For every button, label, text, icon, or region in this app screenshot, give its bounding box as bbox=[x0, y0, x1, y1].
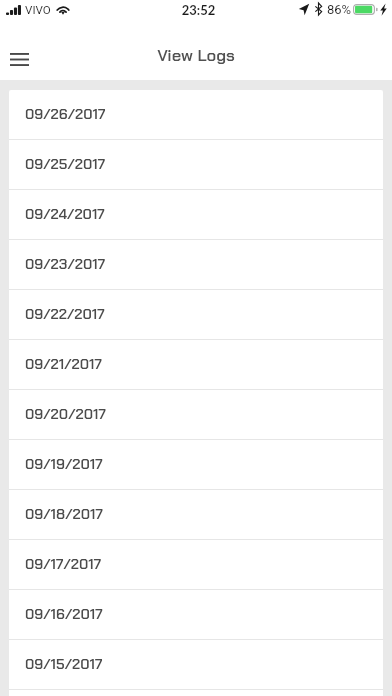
button[interactable]: Open navigation menu bbox=[0, 30, 38, 80]
staticText: 09/16/2017 bbox=[25, 605, 103, 624]
staticText: 09/26/2017 bbox=[25, 105, 106, 124]
button[interactable]: 09/18/2017 bbox=[9, 490, 383, 540]
button[interactable]: 09/23/2017 bbox=[9, 240, 383, 290]
staticText: VIVO bbox=[25, 3, 51, 17]
staticText: 09/17/2017 bbox=[25, 555, 102, 574]
button[interactable]: 09/20/2017 bbox=[9, 390, 383, 440]
button[interactable]: 09/26/2017 bbox=[9, 90, 383, 140]
staticText: 86% bbox=[327, 2, 352, 17]
staticText: 09/25/2017 bbox=[25, 155, 106, 174]
button[interactable]: 09/15/2017 bbox=[9, 640, 383, 690]
staticText: 09/21/2017 bbox=[25, 355, 102, 374]
button[interactable]: 09/21/2017 bbox=[9, 340, 383, 390]
button[interactable]: 09/16/2017 bbox=[9, 590, 383, 640]
staticText: 09/23/2017 bbox=[25, 255, 106, 274]
button[interactable]: 09/24/2017 bbox=[9, 190, 383, 240]
staticText: 09/22/2017 bbox=[25, 305, 105, 324]
button[interactable]: 09/19/2017 bbox=[9, 440, 383, 490]
staticText: 23:52 bbox=[164, 2, 233, 18]
button[interactable]: 09/22/2017 bbox=[9, 290, 383, 340]
staticText: 09/24/2017 bbox=[25, 205, 105, 224]
staticText: View Logs bbox=[157, 45, 235, 67]
button[interactable]: 09/25/2017 bbox=[9, 140, 383, 190]
staticText: 09/19/2017 bbox=[25, 455, 103, 474]
staticText: 09/20/2017 bbox=[25, 405, 106, 424]
staticText: 09/15/2017 bbox=[25, 655, 103, 674]
button[interactable]: 09/17/2017 bbox=[9, 540, 383, 590]
staticText: 09/18/2017 bbox=[25, 505, 103, 524]
